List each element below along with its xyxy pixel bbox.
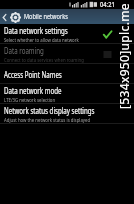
button[interactable]: Back [0, 10, 9, 24]
staticText: Access Point Names [4, 69, 62, 80]
staticText: LTE/3G network selection [4, 97, 56, 104]
button[interactable]: Network status display settings [0, 104, 134, 124]
staticText: Data network mode [4, 85, 62, 96]
staticText: 04:21 [100, 0, 115, 9]
staticText: Data roaming [4, 45, 44, 56]
button[interactable]: Data network settings [0, 24, 134, 44]
staticText: [534x950]uplc.me [116, 3, 132, 109]
button[interactable]: Settings [9, 10, 22, 24]
button[interactable]: Data roaming [0, 44, 134, 64]
staticText: Data network settings [4, 25, 68, 36]
staticText: Adjust how the network status is display… [4, 117, 91, 124]
staticText: Mobile networks [24, 12, 68, 22]
staticText: Connect to data services when roaming [4, 57, 84, 64]
staticText: Network status display settings [4, 105, 95, 116]
staticText: Select whether to allow data network [4, 37, 79, 44]
button[interactable]: Access Point Names [0, 64, 134, 84]
button[interactable]: Data network mode [0, 84, 134, 104]
